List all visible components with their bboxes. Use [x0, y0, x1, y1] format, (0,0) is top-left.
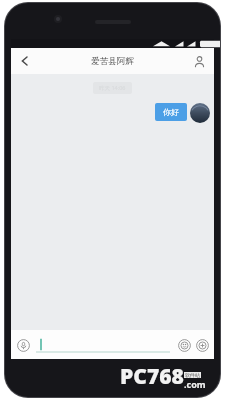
button[interactable]: 你好 — [155, 103, 187, 121]
button[interactable]: Avatar — [190, 103, 210, 123]
staticText: 你好 — [163, 107, 179, 117]
staticText: 软件站 — [185, 372, 200, 378]
button[interactable] — [36, 336, 170, 353]
button[interactable]: Contact info — [188, 50, 210, 72]
button[interactable]: More options — [194, 337, 210, 353]
button[interactable]: Emoji — [176, 337, 192, 353]
staticText: 爱苦县阿辉 — [91, 56, 134, 67]
button[interactable]: Back — [14, 50, 36, 72]
staticText: PC768 — [120, 362, 184, 391]
staticText: .com — [184, 378, 206, 390]
button[interactable]: Voice message — [15, 337, 31, 353]
